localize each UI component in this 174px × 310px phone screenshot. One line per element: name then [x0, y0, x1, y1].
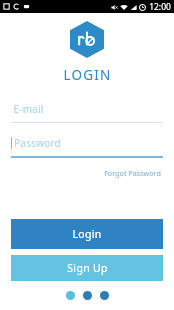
staticText: Password	[14, 136, 61, 150]
staticText: Login	[72, 227, 102, 241]
button[interactable]: Password	[11, 136, 163, 158]
staticText: LOGIN	[63, 66, 112, 84]
staticText: Sign Up	[67, 261, 108, 275]
staticText: 12:00	[149, 1, 171, 13]
button[interactable]: Login	[11, 219, 163, 249]
staticText: E-mail	[13, 102, 44, 116]
staticText: Forgot Password	[104, 168, 161, 178]
button[interactable]: E-mail	[11, 102, 163, 123]
button[interactable]: Forgot Password	[102, 166, 163, 180]
button[interactable]: Sign Up	[11, 255, 163, 281]
